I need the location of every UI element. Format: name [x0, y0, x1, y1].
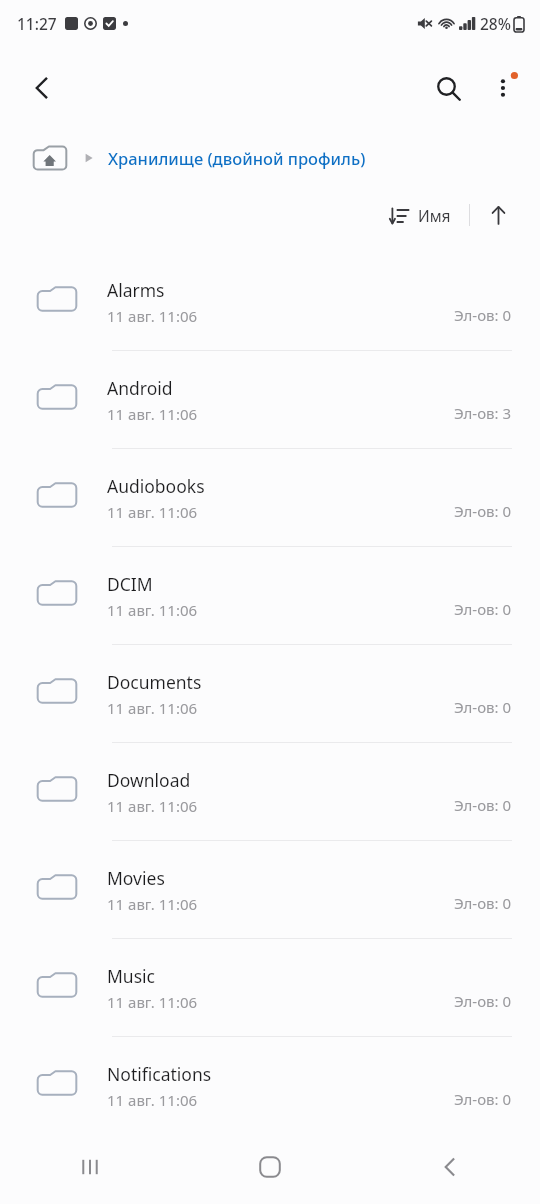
staticText: Имя [418, 205, 451, 226]
staticText: Download [107, 768, 191, 792]
staticText: Хранилище (двойной профиль) [108, 147, 366, 169]
button[interactable]: Documents [0, 645, 540, 743]
button[interactable]: Имя [381, 199, 459, 232]
staticText: Эл-ов: 0 [454, 795, 512, 815]
staticText: Movies [107, 866, 165, 890]
staticText: Music [107, 964, 155, 988]
button[interactable]: Хранилище (двойной профиль) [108, 143, 366, 173]
staticText: 11 авг. 11:06 [107, 404, 198, 424]
staticText: DCIM [107, 572, 153, 596]
button[interactable]: Android [0, 351, 540, 449]
button[interactable]: DCIM [0, 547, 540, 645]
staticText: Android [107, 376, 173, 400]
staticText: Эл-ов: 0 [454, 305, 512, 325]
staticText: 11 авг. 11:06 [107, 306, 198, 326]
staticText: Эл-ов: 0 [454, 599, 512, 619]
staticText: 11:27 [17, 13, 57, 34]
staticText: Эл-ов: 0 [454, 697, 512, 717]
staticText: 11 авг. 11:06 [107, 600, 198, 620]
staticText: Эл-ов: 0 [454, 991, 512, 1011]
staticText: 28% [480, 13, 511, 34]
staticText: Documents [107, 670, 202, 694]
staticText: 11 авг. 11:06 [107, 992, 198, 1012]
staticText: 11 авг. 11:06 [107, 796, 198, 816]
button[interactable]: Notifications [0, 1037, 540, 1135]
staticText: 11 авг. 11:06 [107, 1090, 198, 1110]
button[interactable]: Sort ascending [476, 193, 520, 237]
staticText: 11 авг. 11:06 [107, 698, 198, 718]
staticText: Эл-ов: 0 [454, 1089, 512, 1109]
staticText: Alarms [107, 278, 165, 302]
staticText: Эл-ов: 0 [454, 893, 512, 913]
button[interactable]: Back [360, 1130, 540, 1204]
staticText: 11 авг. 11:06 [107, 894, 198, 914]
button[interactable]: Search [420, 60, 476, 116]
staticText: Эл-ов: 3 [454, 403, 512, 423]
staticText: Notifications [107, 1062, 212, 1086]
button[interactable]: Alarms [0, 253, 540, 351]
button[interactable]: Back [14, 60, 70, 116]
button[interactable]: Audiobooks [0, 449, 540, 547]
staticText: Audiobooks [107, 474, 205, 498]
staticText: Эл-ов: 0 [454, 501, 512, 521]
button[interactable]: Download [0, 743, 540, 841]
button[interactable]: Music [0, 939, 540, 1037]
staticText: 11 авг. 11:06 [107, 502, 198, 522]
button[interactable]: More options [476, 60, 532, 116]
button[interactable]: Home storage [28, 136, 72, 180]
button[interactable]: Recent apps [0, 1130, 180, 1204]
button[interactable]: Movies [0, 841, 540, 939]
button[interactable]: Home [180, 1130, 360, 1204]
